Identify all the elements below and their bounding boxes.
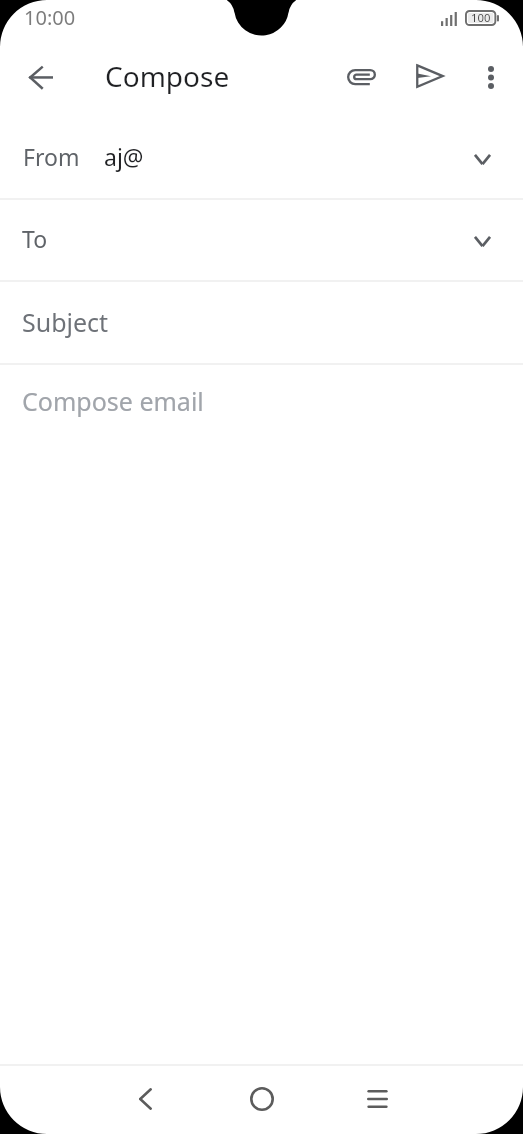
staticText: Subject — [22, 305, 109, 339]
staticText: 10:00 — [24, 4, 76, 31]
staticText: Compose — [105, 57, 230, 95]
staticText: To — [22, 223, 48, 254]
button[interactable]: Home — [234, 1071, 290, 1127]
button[interactable]: Subject — [0, 281, 523, 364]
button[interactable]: Attach file — [337, 53, 385, 101]
button[interactable]: More options — [469, 55, 513, 99]
button[interactable]: To — [0, 199, 523, 281]
staticText: From — [23, 141, 80, 172]
button[interactable]: Compose email — [0, 364, 523, 1065]
button[interactable]: Navigate up — [17, 53, 65, 101]
staticText: aj@ — [104, 141, 144, 172]
staticText: Compose email — [22, 384, 204, 418]
button[interactable]: Change sender — [464, 141, 500, 177]
button[interactable]: Back — [117, 1071, 173, 1127]
button[interactable]: Show Cc and Bcc — [464, 223, 500, 259]
staticText: 100 — [471, 10, 491, 25]
button[interactable]: Send — [406, 52, 454, 100]
button[interactable]: Recent apps — [349, 1071, 405, 1127]
button[interactable]: From — [0, 117, 523, 199]
